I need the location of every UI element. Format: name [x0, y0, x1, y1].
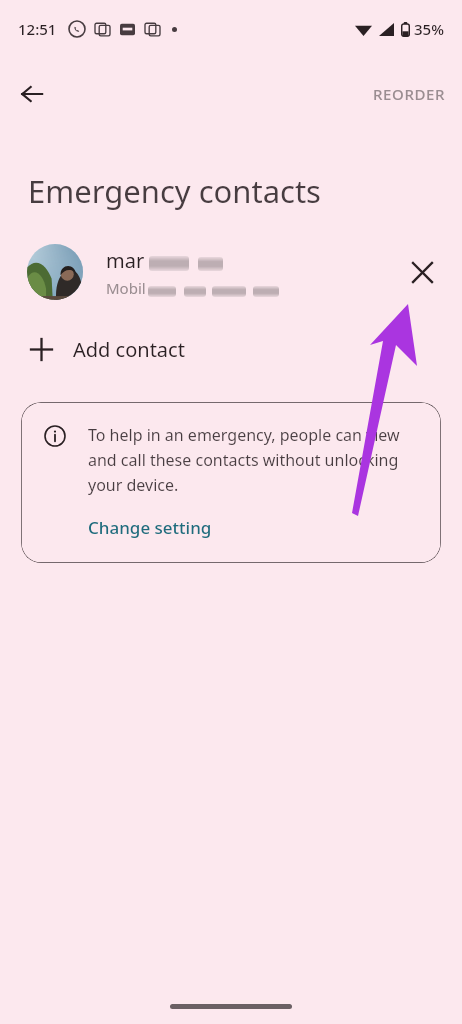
staticText: 35% [414, 19, 444, 39]
staticText: REORDER [373, 84, 446, 104]
staticText: To help in an emergency, people can view… [88, 424, 425, 495]
button[interactable]: REORDER [363, 76, 456, 112]
staticText: Emergency contacts [28, 170, 321, 212]
staticText: 12:51 [18, 19, 57, 39]
button[interactable]: mar [0, 239, 462, 305]
staticText: Change setting [88, 516, 212, 539]
button[interactable]: Change setting [88, 516, 212, 539]
staticText: mar [106, 247, 145, 274]
button[interactable]: Remove contact [398, 248, 446, 296]
button[interactable]: Back [10, 72, 54, 116]
staticText: Mobil [106, 278, 146, 298]
staticText: Add contact [73, 336, 185, 363]
button[interactable]: Add contact [0, 323, 462, 375]
